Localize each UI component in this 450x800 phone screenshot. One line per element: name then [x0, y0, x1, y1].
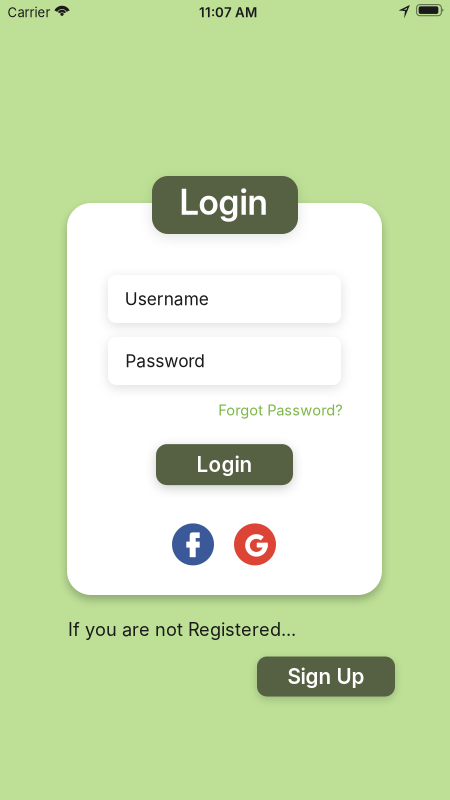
staticText: Sign Up	[287, 664, 364, 689]
staticText: Carrier	[7, 5, 50, 20]
textField[interactable]: Username	[108, 275, 341, 323]
staticText: 11:07 AM	[199, 4, 257, 20]
button[interactable]: Login	[156, 444, 293, 485]
staticText: Username	[125, 288, 209, 309]
staticText: Password	[125, 350, 205, 371]
button[interactable]: Sign in with Facebook	[172, 523, 214, 565]
button[interactable]: Sign in with Google	[234, 523, 276, 565]
textField[interactable]: Password	[108, 337, 341, 385]
staticText: Forgot Password?	[218, 401, 342, 419]
button[interactable]: Sign Up	[257, 656, 395, 696]
staticText: Login	[196, 452, 252, 477]
staticText: Login	[179, 181, 267, 223]
button[interactable]: Forgot Password?	[218, 401, 342, 419]
staticText: If you are not Registered...	[68, 618, 296, 640]
